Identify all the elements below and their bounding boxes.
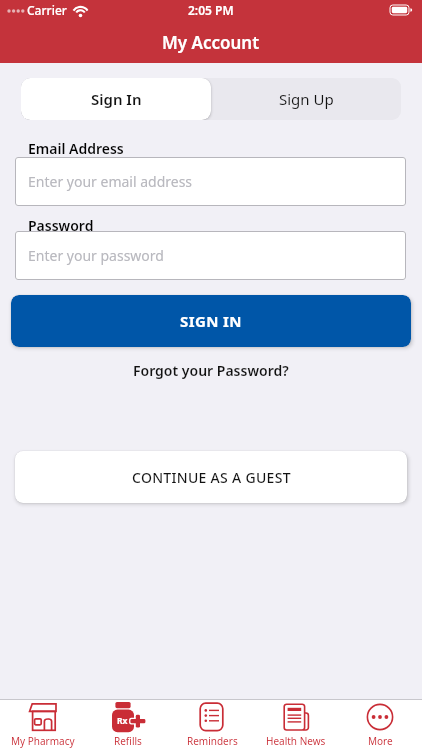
staticText: Email Address: [28, 139, 124, 158]
staticText: Sign In: [91, 89, 142, 109]
button[interactable]: Enter your email address: [15, 157, 406, 206]
staticText: Enter your email address: [28, 172, 193, 191]
button[interactable]: Sign Up: [211, 78, 401, 120]
staticText: Refills: [114, 734, 142, 748]
staticText: My Pharmacy: [11, 734, 75, 748]
button[interactable]: Reminders: [170, 700, 254, 750]
staticText: SIGN IN: [180, 311, 242, 331]
button[interactable]: More: [338, 700, 422, 750]
staticText: Rx: [117, 715, 128, 727]
staticText: Reminders: [187, 734, 238, 748]
button[interactable]: Forgot your Password?: [0, 361, 422, 380]
button[interactable]: CONTINUE AS A GUEST: [15, 451, 407, 503]
staticText: More: [368, 734, 393, 748]
button[interactable]: Rx: [85, 700, 170, 750]
staticText: My Account: [162, 31, 260, 54]
button[interactable]: SIGN IN: [11, 295, 411, 347]
staticText: Carrier: [27, 2, 67, 18]
button[interactable]: Health News: [254, 700, 338, 750]
button[interactable]: Sign In: [21, 78, 211, 120]
staticText: Password: [28, 216, 94, 235]
button[interactable]: Enter your password: [15, 231, 406, 280]
staticText: 2:05 PM: [188, 2, 234, 18]
staticText: Health News: [266, 734, 326, 748]
staticText: CONTINUE AS A GUEST: [132, 468, 291, 487]
staticText: Enter your password: [28, 246, 164, 265]
staticText: Forgot your Password?: [133, 361, 289, 380]
button[interactable]: My Pharmacy: [0, 700, 85, 750]
staticText: Sign Up: [279, 89, 334, 109]
